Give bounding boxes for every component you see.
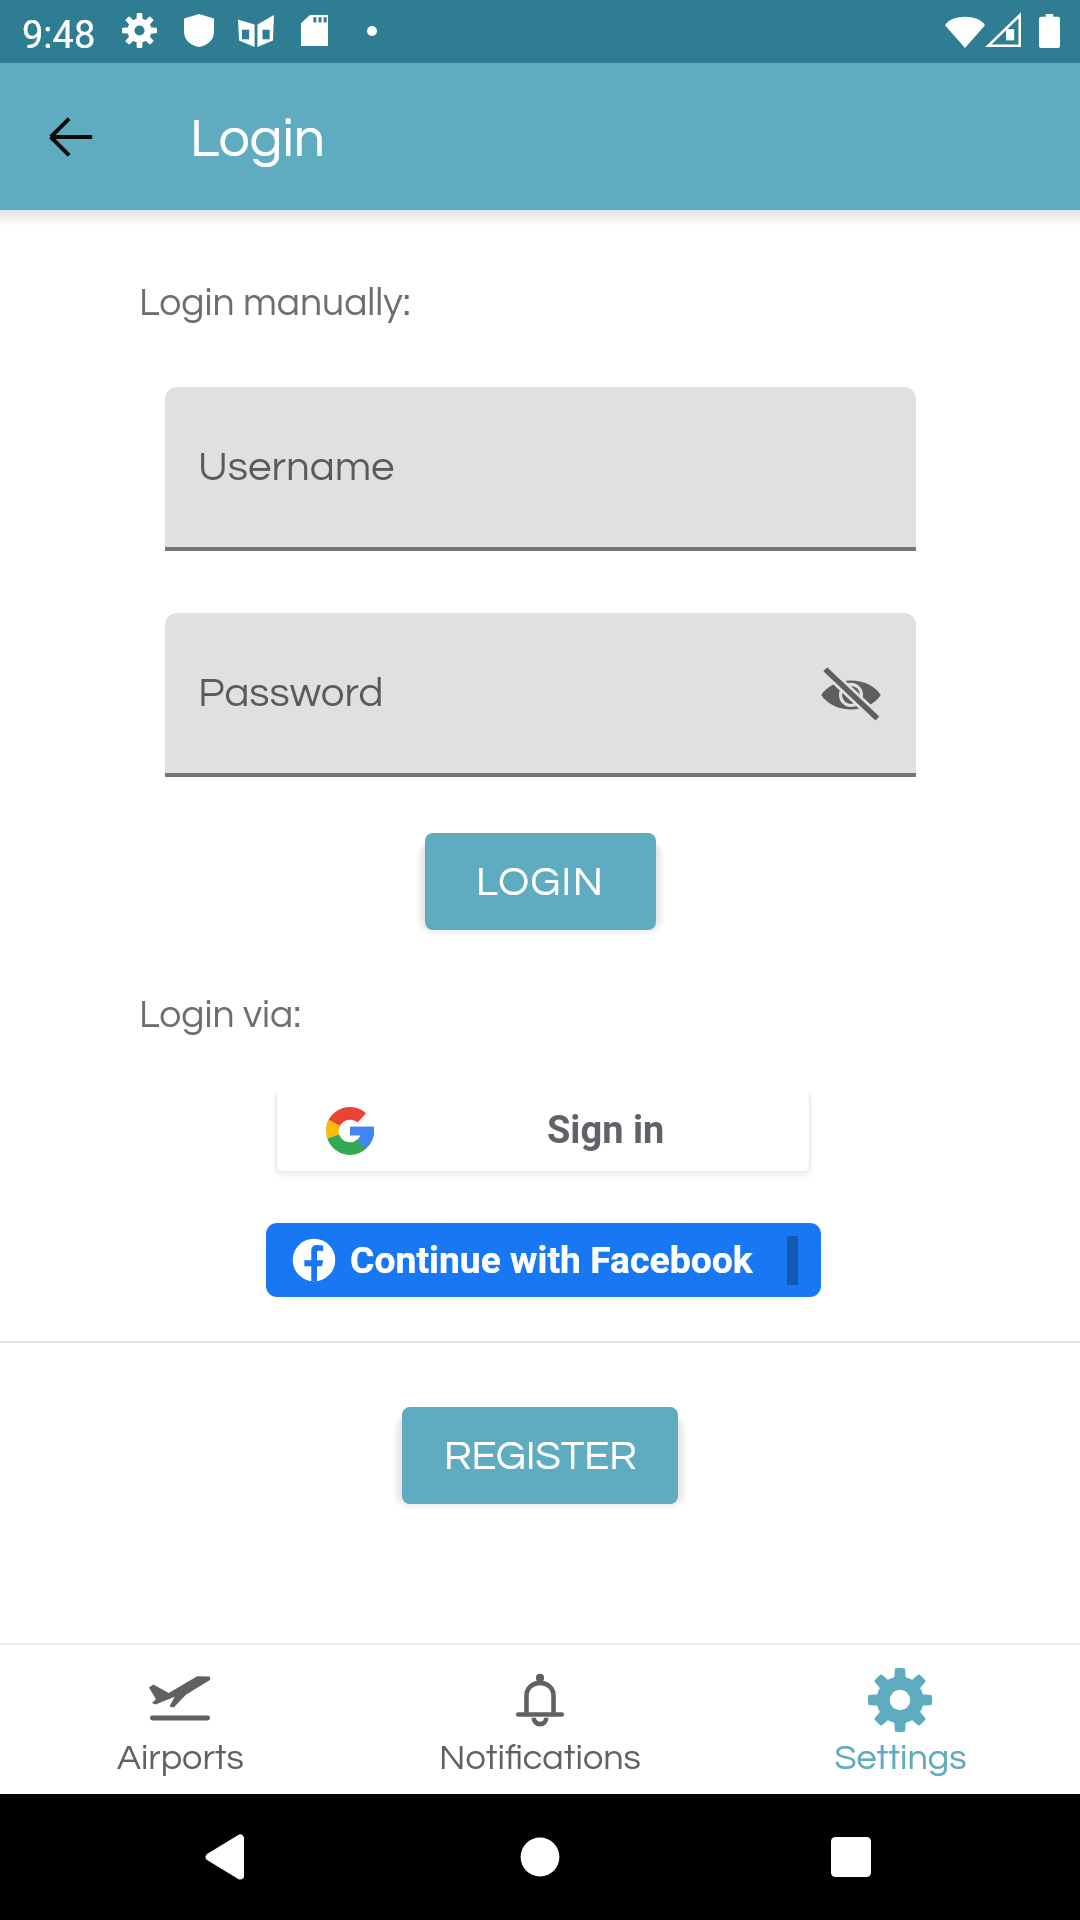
staticText: Continue with Facebook [350, 1238, 753, 1282]
staticText: REGISTER [444, 1435, 637, 1477]
button[interactable]: REGISTER [402, 1407, 678, 1504]
staticText: Settings [834, 1739, 967, 1776]
button[interactable]: Back [180, 1812, 270, 1902]
button[interactable]: Show password [819, 661, 883, 725]
staticText: Login via: [139, 995, 302, 1035]
button[interactable]: Password [165, 613, 916, 777]
staticText: Login manually: [139, 283, 411, 323]
button[interactable]: Airports [0, 1645, 360, 1776]
button[interactable]: Continue with Facebook [266, 1223, 821, 1297]
button[interactable]: Back [24, 90, 118, 184]
button[interactable]: LOGIN [425, 833, 656, 930]
staticText: Airports [117, 1739, 244, 1776]
staticText: Notifications [439, 1739, 641, 1776]
staticText: LOGIN [476, 861, 605, 903]
button[interactable]: Home [495, 1812, 585, 1902]
staticText: Sign in [547, 1108, 665, 1153]
staticText: Password [198, 672, 384, 715]
staticText: Login [190, 111, 325, 168]
button[interactable]: Sign in [277, 1090, 809, 1171]
button[interactable]: Recents [806, 1812, 896, 1902]
staticText: 9:48 [22, 13, 96, 58]
button[interactable]: Settings [720, 1645, 1080, 1776]
button[interactable]: Username [165, 387, 916, 551]
staticText: Username [198, 446, 395, 489]
button[interactable]: Notifications [360, 1645, 720, 1776]
